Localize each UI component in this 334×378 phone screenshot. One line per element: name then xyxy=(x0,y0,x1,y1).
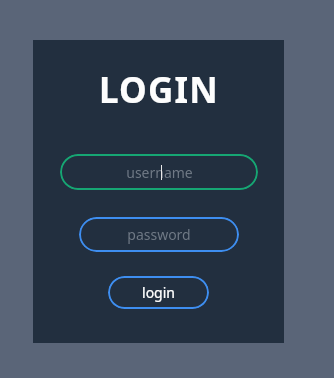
button[interactable]: password xyxy=(79,217,239,252)
staticText: login xyxy=(142,283,175,302)
staticText: username xyxy=(126,163,193,182)
button[interactable]: login xyxy=(108,276,209,309)
button[interactable]: username xyxy=(60,154,258,190)
staticText: LOGIN xyxy=(99,66,219,114)
staticText: password xyxy=(127,225,191,244)
